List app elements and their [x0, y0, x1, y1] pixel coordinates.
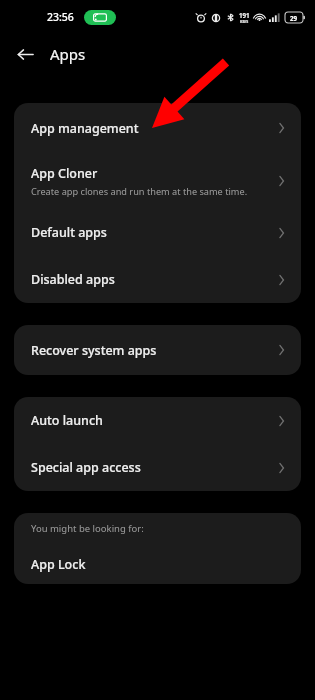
staticText: You might be looking for:	[31, 522, 144, 535]
staticText: App Lock	[31, 556, 86, 573]
staticText: 191	[239, 11, 250, 19]
staticText: Auto launch	[31, 412, 103, 429]
staticText: 23:56	[47, 10, 74, 24]
staticText: 29	[290, 14, 298, 22]
button[interactable]: Auto launch	[14, 397, 301, 444]
button[interactable]: App management	[14, 103, 301, 153]
staticText: KB/S	[240, 19, 249, 24]
button[interactable]: App Cloner	[14, 153, 301, 209]
button[interactable]: App Lock	[14, 544, 301, 584]
button[interactable]: Default apps	[14, 209, 301, 256]
button[interactable]: Recover system apps	[14, 325, 301, 375]
staticText: Create app clones and run them at the sa…	[31, 185, 248, 198]
staticText: Special app access	[31, 459, 141, 476]
button[interactable]: Back	[8, 37, 42, 71]
staticText: Apps	[50, 44, 86, 64]
staticText: App Cloner	[31, 165, 98, 182]
staticText: Default apps	[31, 224, 107, 241]
button[interactable]: Disabled apps	[14, 256, 301, 303]
button[interactable]: Special app access	[14, 444, 301, 491]
staticText: Disabled apps	[31, 271, 115, 288]
staticText: Recover system apps	[31, 342, 157, 359]
staticText: App management	[31, 120, 139, 137]
